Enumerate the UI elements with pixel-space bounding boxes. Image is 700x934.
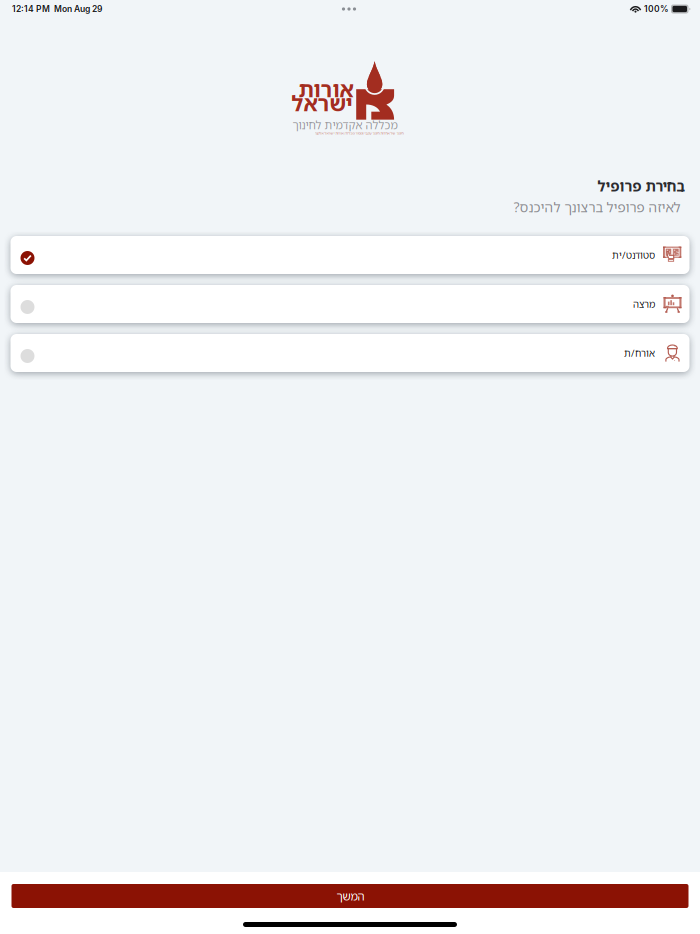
staticText: סטודנט/ית <box>611 248 654 262</box>
staticText: אורות <box>298 74 353 103</box>
staticText: מרצה <box>632 297 654 311</box>
staticText: חינוך של אחדות חינוך עקבי ומסור מכללה או… <box>314 131 403 135</box>
button[interactable]: סטודנט/ית <box>10 236 689 274</box>
button[interactable]: מרצה <box>10 285 689 323</box>
staticText: ישראל <box>291 88 352 117</box>
staticText: בחירת פרופיל <box>597 176 685 196</box>
staticText: לאיזה פרופיל ברצונך להיכנס? <box>513 198 680 216</box>
button[interactable]: המשך <box>11 884 688 908</box>
staticText: המשך <box>336 888 364 904</box>
staticText: 100% <box>644 4 669 14</box>
staticText: 12:14 PM <box>12 4 50 14</box>
staticText: אורח/ת <box>623 346 654 360</box>
staticText: Mon Aug 29 <box>54 4 102 14</box>
button[interactable]: אורח/ת <box>10 334 689 372</box>
staticText: מכללה אקדמית לחינוך <box>292 117 397 133</box>
